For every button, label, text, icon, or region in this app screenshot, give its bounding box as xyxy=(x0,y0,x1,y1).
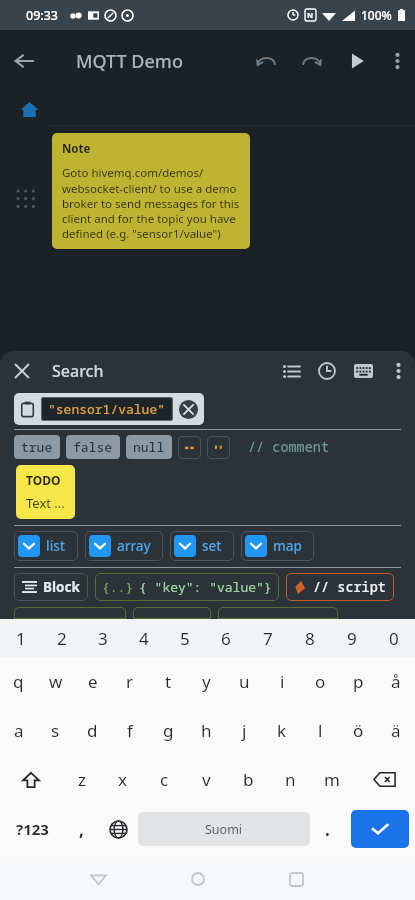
button[interactable]: s xyxy=(37,706,74,755)
button[interactable]: Single quote xyxy=(207,436,230,459)
staticText: j xyxy=(242,719,247,742)
button[interactable]: null xyxy=(133,438,165,456)
button[interactable]: Block xyxy=(22,578,80,596)
button[interactable]: Home xyxy=(14,94,44,124)
staticText: ä xyxy=(391,719,401,742)
button[interactable]: 2 xyxy=(41,619,82,657)
button[interactable]: true xyxy=(21,438,53,456)
button[interactable]: list xyxy=(18,535,74,557)
button[interactable]: b xyxy=(227,755,269,804)
button[interactable]: Keyboard xyxy=(345,351,381,391)
button[interactable]: 4 xyxy=(123,619,164,657)
button[interactable]: Redo xyxy=(289,30,335,92)
button[interactable]: x xyxy=(102,755,143,804)
staticText: set xyxy=(202,537,222,555)
button[interactable]: ä xyxy=(377,706,415,755)
button[interactable]: Recent xyxy=(309,351,345,391)
button[interactable]: Double quotes xyxy=(178,436,201,459)
button[interactable]: 1 xyxy=(0,619,41,657)
button[interactable]: n xyxy=(269,755,311,804)
button[interactable]: 3 xyxy=(82,619,123,657)
button[interactable]: . xyxy=(310,804,345,854)
button[interactable]: ö xyxy=(339,706,377,755)
button[interactable]: g xyxy=(149,706,187,755)
button[interactable]: c xyxy=(143,755,185,804)
button[interactable]: Run xyxy=(335,30,379,92)
button[interactable]: Suomi xyxy=(138,812,310,846)
button[interactable]: h xyxy=(187,706,225,755)
button[interactable]: 7 xyxy=(247,619,289,657)
button[interactable]: 8 xyxy=(289,619,331,657)
button[interactable]: , xyxy=(64,804,99,854)
button[interactable]: // comment xyxy=(248,438,329,456)
button[interactable]: More options xyxy=(379,30,415,92)
button[interactable]: 6 xyxy=(205,619,247,657)
button[interactable]: v xyxy=(185,755,227,804)
button[interactable]: 0 xyxy=(373,619,415,657)
button[interactable]: "sensor1/value" xyxy=(19,397,199,421)
button[interactable]: e xyxy=(74,657,111,706)
button[interactable]: History list xyxy=(273,351,309,391)
button[interactable]: ?123 xyxy=(0,804,64,854)
staticText: Search xyxy=(52,360,104,382)
button[interactable]: å xyxy=(377,657,415,706)
button[interactable]: r xyxy=(111,657,149,706)
staticText: l xyxy=(318,719,323,742)
button[interactable]: Recents xyxy=(247,858,346,900)
button[interactable]: z xyxy=(61,755,102,804)
button[interactable]: u xyxy=(225,657,263,706)
button[interactable]: Undo xyxy=(243,30,289,92)
button[interactable]: Home xyxy=(148,858,247,900)
staticText: x xyxy=(118,768,127,791)
button[interactable]: array xyxy=(89,535,159,557)
staticText: n xyxy=(285,768,296,791)
button[interactable]: p xyxy=(339,657,377,706)
button[interactable]: map xyxy=(245,535,310,557)
button[interactable]: j xyxy=(225,706,263,755)
button[interactable]: Back xyxy=(49,858,148,900)
button[interactable]: t xyxy=(149,657,187,706)
button[interactable]: // script xyxy=(294,578,386,596)
staticText: b xyxy=(243,768,254,791)
button[interactable]: a xyxy=(0,706,37,755)
button[interactable]: Note xyxy=(62,141,240,241)
staticText: map xyxy=(273,537,302,555)
button[interactable]: w xyxy=(37,657,74,706)
button[interactable]: 9 xyxy=(331,619,373,657)
staticText: {..} xyxy=(102,578,134,596)
button[interactable]: Enter xyxy=(351,810,409,848)
staticText: w xyxy=(49,670,63,693)
staticText: ö xyxy=(353,719,364,742)
button[interactable]: Close search xyxy=(0,351,44,391)
button[interactable]: q xyxy=(0,657,37,706)
button[interactable]: k xyxy=(263,706,301,755)
staticText: h xyxy=(201,719,212,742)
button[interactable]: TODO xyxy=(26,472,65,512)
button[interactable]: Back xyxy=(0,30,48,92)
button[interactable]: l xyxy=(301,706,339,755)
staticText: s xyxy=(51,719,60,742)
button[interactable]: y xyxy=(187,657,225,706)
button[interactable]: o xyxy=(301,657,339,706)
button[interactable]: m xyxy=(311,755,353,804)
button[interactable]: Backspace xyxy=(353,755,415,804)
staticText: 7 xyxy=(263,627,273,650)
staticText: TODO xyxy=(26,472,61,488)
button[interactable]: More options xyxy=(381,351,415,391)
staticText: . xyxy=(325,818,330,841)
button[interactable]: f xyxy=(111,706,149,755)
button[interactable]: 5 xyxy=(164,619,205,657)
button[interactable]: i xyxy=(263,657,301,706)
staticText: 8 xyxy=(305,627,315,650)
staticText: Suomi xyxy=(205,821,243,838)
button[interactable]: Change language xyxy=(99,804,138,854)
button[interactable]: set xyxy=(174,535,230,557)
staticText: ?123 xyxy=(16,819,49,839)
button[interactable]: Clear xyxy=(178,399,199,420)
staticText: t xyxy=(165,670,172,693)
button[interactable]: d xyxy=(74,706,111,755)
button[interactable]: false xyxy=(73,438,113,456)
button[interactable]: Shift xyxy=(0,755,61,804)
staticText: o xyxy=(315,670,326,693)
button[interactable]: {..} xyxy=(102,578,272,596)
